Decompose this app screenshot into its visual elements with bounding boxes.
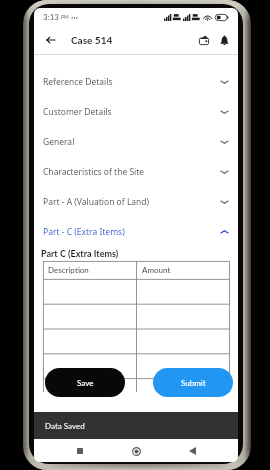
staticText: Reference Details [43,76,113,88]
button[interactable]: Recents [70,441,90,461]
button[interactable]: Characteristics of the Site [34,157,238,187]
button[interactable]: Save [45,368,125,397]
button[interactable]: Customer Details [34,97,238,127]
staticText: 3:13 [43,12,59,22]
button[interactable]: Part - A (Valuation of Land) [34,187,238,217]
staticText: Data Saved [45,421,85,431]
button[interactable]: Part - C (Extra Items) [34,217,238,247]
button[interactable]: General [34,127,238,157]
staticText: Description [48,265,89,275]
staticText: Part - A (Valuation of Land) [43,196,150,208]
staticText: Characteristics of the Site [43,166,145,178]
button[interactable]: Home [126,441,146,461]
button[interactable]: Back [182,441,202,461]
button[interactable]: Submit [153,368,233,397]
staticText: Amount [142,265,171,275]
staticText: Customer Details [43,106,112,118]
button[interactable]: Wallet [194,30,214,50]
button[interactable]: Notifications [214,30,234,50]
staticText: Submit [181,378,206,388]
button[interactable]: Reference Details [34,67,238,97]
staticText: Part - C (Extra Items) [43,226,125,238]
staticText: General [43,136,75,148]
button[interactable]: Back [40,30,60,50]
staticText: Case 514 [71,34,113,46]
staticText: Part C (Extra Items) [41,248,119,259]
staticText: Save [77,378,94,388]
staticText: PM [61,14,69,20]
